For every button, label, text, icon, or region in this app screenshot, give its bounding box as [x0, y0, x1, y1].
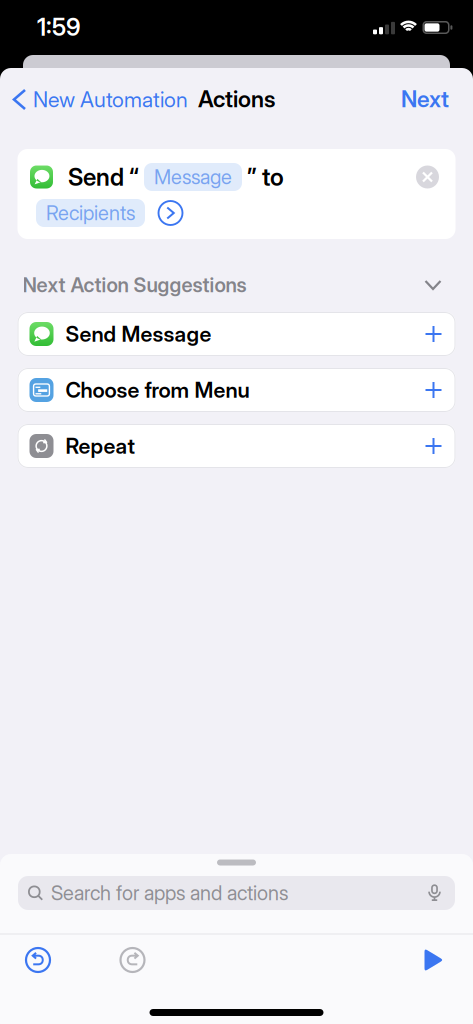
staticText: Actions — [198, 86, 275, 112]
staticText: New Automation — [33, 87, 188, 112]
button[interactable]: Redo — [117, 945, 147, 975]
button[interactable]: Message — [144, 163, 242, 191]
staticText: Search for apps and actions — [51, 881, 288, 905]
staticText: ” to — [242, 163, 284, 191]
button[interactable]: Undo — [23, 945, 53, 975]
button[interactable]: Repeat — [17, 424, 455, 468]
staticText: Repeat — [65, 433, 134, 459]
staticText: Send Message — [65, 321, 211, 347]
button[interactable]: Search for apps and actions — [18, 876, 455, 910]
staticText: 1:59 — [37, 13, 81, 41]
button[interactable]: Choose from Menu — [17, 368, 455, 412]
staticText: Message — [154, 165, 232, 189]
button[interactable]: Collapse suggestions — [419, 275, 446, 295]
button[interactable]: New Automation — [14, 81, 294, 117]
button[interactable]: Run — [419, 943, 448, 976]
staticText: Send “ — [68, 163, 144, 191]
button[interactable]: Delete action — [414, 164, 440, 190]
staticText: Recipients — [46, 201, 135, 225]
staticText: Choose from Menu — [65, 377, 249, 403]
staticText: Next — [401, 86, 449, 112]
button[interactable]: Show more — [158, 200, 183, 225]
button[interactable]: Send Message — [17, 312, 455, 356]
button[interactable]: Recipients — [36, 199, 145, 227]
staticText: Next Action Suggestions — [22, 273, 246, 297]
button[interactable]: Next — [369, 81, 449, 117]
